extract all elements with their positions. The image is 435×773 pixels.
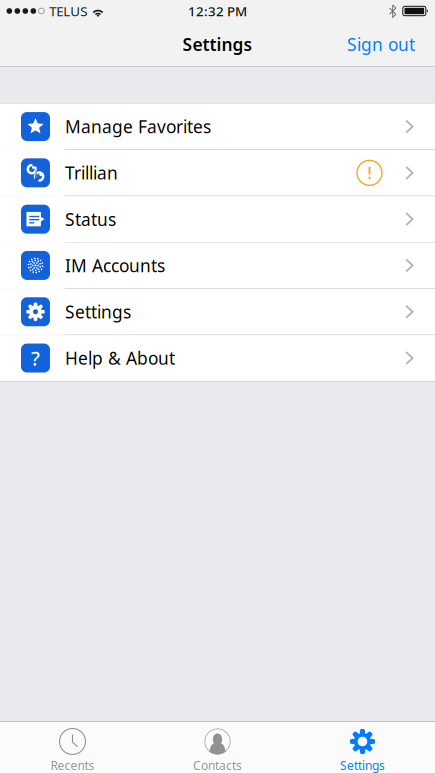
button[interactable]: IM Accounts <box>0 243 435 288</box>
button[interactable]: Manage Favorites <box>0 104 435 149</box>
button[interactable]: ? <box>0 335 435 381</box>
button[interactable]: Trillian <box>0 150 435 196</box>
button[interactable]: Sign out <box>347 25 435 64</box>
staticText: Trillian <box>65 161 118 184</box>
staticText: Recents <box>50 757 94 773</box>
staticText: ? <box>31 345 40 371</box>
button[interactable]: Settings <box>290 722 435 773</box>
staticText: Status <box>65 208 116 231</box>
staticText: Settings <box>182 33 252 56</box>
staticText: Sign out <box>347 33 415 56</box>
staticText: IM Accounts <box>65 254 165 277</box>
button[interactable]: Recents <box>0 722 145 773</box>
button[interactable]: Status <box>0 196 435 242</box>
staticText: Help & About <box>65 346 175 369</box>
staticText: Manage Favorites <box>65 115 211 138</box>
staticText: TELUS <box>49 2 87 20</box>
staticText: Settings <box>340 757 385 773</box>
staticText: 12:32 PM <box>188 2 247 20</box>
button[interactable]: Settings <box>0 289 435 335</box>
button[interactable]: Contacts <box>145 722 290 773</box>
staticText: Settings <box>65 300 131 323</box>
staticText: Contacts <box>193 757 242 773</box>
